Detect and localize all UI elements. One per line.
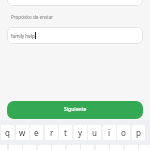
button[interactable]: family help	[7, 27, 143, 44]
button[interactable]: e	[30, 125, 43, 140]
staticText: y	[78, 127, 83, 138]
staticText: q	[5, 127, 10, 138]
staticText: e	[34, 127, 39, 138]
button[interactable]: y	[74, 125, 87, 140]
staticText: t	[64, 127, 67, 138]
button[interactable]: o	[117, 125, 130, 140]
staticText: i	[108, 127, 111, 138]
staticText: w	[19, 127, 26, 138]
button[interactable]: u	[88, 125, 101, 140]
button[interactable]: i	[103, 125, 116, 140]
staticText: o	[121, 127, 126, 138]
staticText: Siguiente	[64, 106, 87, 113]
button[interactable]: p	[132, 125, 145, 140]
staticText: u	[92, 127, 97, 138]
button[interactable]: t	[59, 125, 72, 140]
button[interactable]: Siguiente	[7, 101, 143, 119]
staticText: Propósito de enviar	[11, 14, 54, 20]
staticText: r	[50, 127, 54, 138]
button[interactable]: q	[1, 125, 14, 140]
staticText: p	[136, 127, 141, 138]
staticText: family help	[11, 33, 35, 39]
button[interactable]: w	[16, 125, 29, 140]
button[interactable]: r	[45, 125, 58, 140]
